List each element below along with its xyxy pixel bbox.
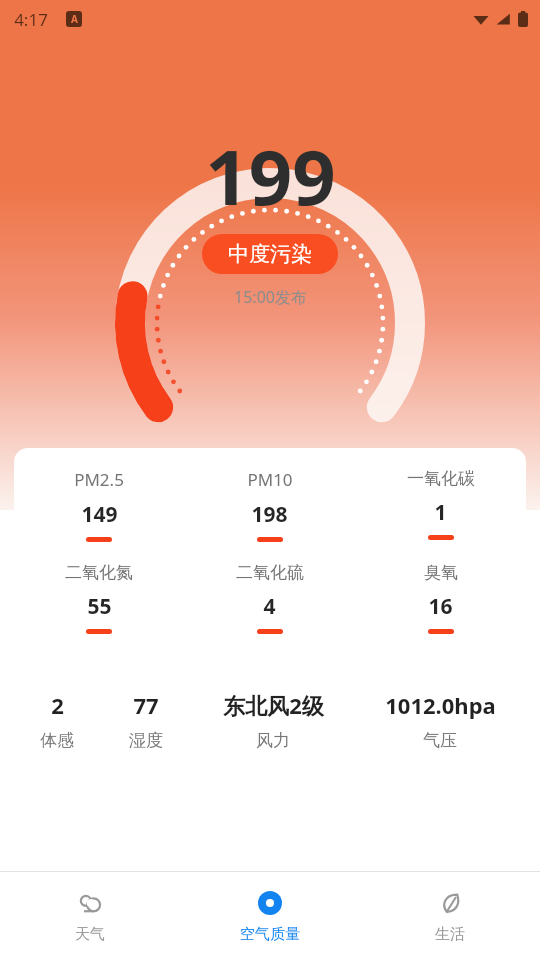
button[interactable]: PM2.5 (14, 468, 184, 542)
button[interactable]: 二氧化硫 (184, 562, 355, 634)
staticText: 1012.0hpa (385, 690, 496, 720)
button[interactable]: 生活 (360, 888, 540, 944)
staticText: 风力 (256, 730, 290, 751)
staticText: 1 (434, 498, 447, 527)
button[interactable]: 一氧化碳 (355, 468, 526, 540)
staticText: 气压 (423, 730, 457, 751)
staticText: 生活 (435, 925, 465, 944)
staticText: 199 (205, 124, 336, 228)
staticText: 15:00发布 (234, 286, 307, 308)
staticText: 二氧化氮 (65, 562, 133, 583)
staticText: 东北风2级 (223, 690, 324, 720)
button[interactable]: 77 (100, 690, 192, 751)
button[interactable]: 1012.0hpa (354, 690, 526, 751)
staticText: 16 (428, 592, 453, 621)
staticText: 198 (251, 500, 288, 529)
staticText: PM10 (247, 468, 293, 491)
button[interactable]: 2 (14, 690, 100, 751)
button[interactable]: 空气质量 (180, 888, 360, 944)
staticText: 77 (133, 690, 159, 720)
button[interactable]: PM10 (184, 468, 355, 542)
button[interactable]: 中度污染 (202, 234, 338, 274)
staticText: PM2.5 (74, 468, 124, 491)
staticText: 中度污染 (228, 241, 312, 267)
button[interactable]: PM2.5 (14, 448, 526, 654)
staticText: 4 (263, 592, 276, 621)
staticText: 体感 (40, 730, 74, 751)
staticText: 臭氧 (424, 562, 458, 583)
staticText: 湿度 (129, 730, 163, 751)
staticText: 2 (51, 690, 64, 720)
button[interactable]: 2 (14, 668, 526, 773)
staticText: 天气 (75, 925, 105, 944)
staticText: 二氧化硫 (236, 562, 304, 583)
staticText: 一氧化碳 (407, 468, 475, 489)
button[interactable]: 天气 (0, 888, 180, 944)
button[interactable]: 东北风2级 (192, 690, 354, 751)
staticText: 4:17 (14, 8, 48, 31)
button[interactable]: 臭氧 (355, 562, 526, 634)
button[interactable]: 二氧化氮 (14, 562, 184, 634)
staticText: 空气质量 (240, 925, 300, 944)
staticText: 55 (87, 592, 112, 621)
staticText: 149 (81, 500, 118, 529)
staticText: A (71, 12, 78, 26)
